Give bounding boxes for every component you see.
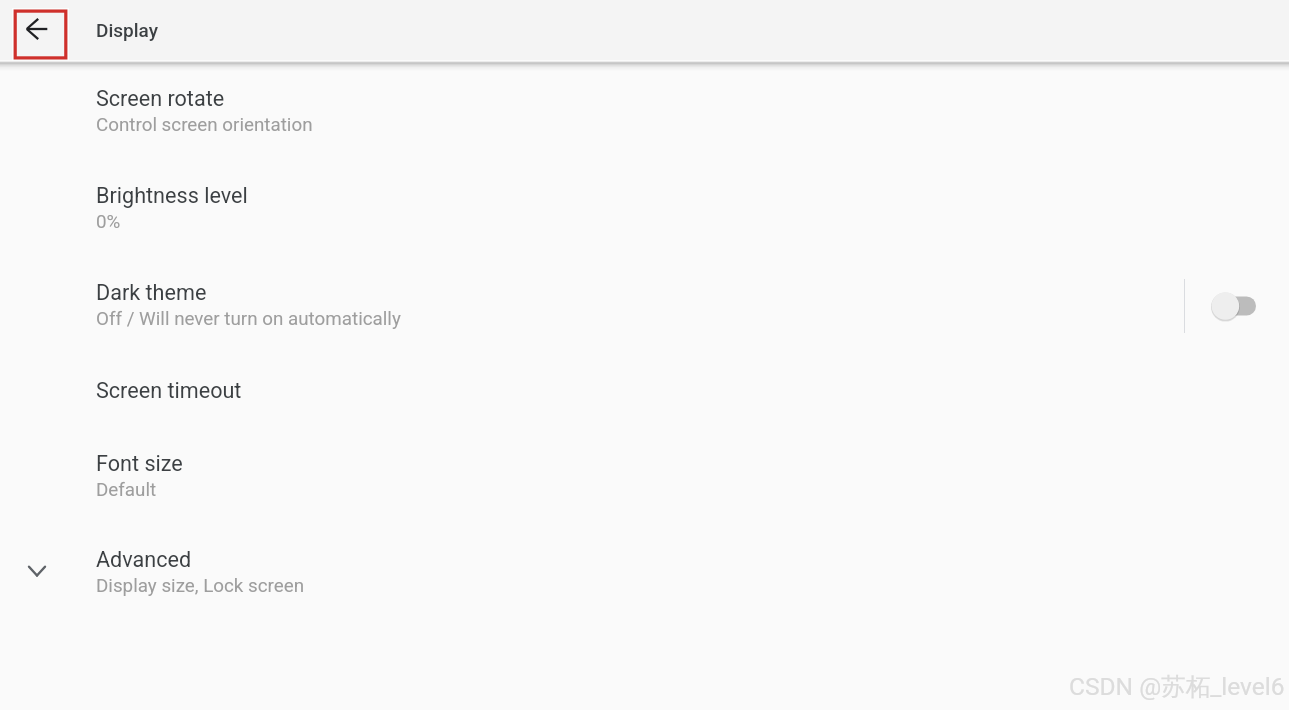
staticText: Brightness level bbox=[96, 183, 248, 208]
button[interactable]: Brightness level bbox=[0, 167, 1289, 257]
staticText: Advanced bbox=[96, 547, 192, 572]
button[interactable]: Screen timeout bbox=[0, 362, 1289, 424]
button[interactable]: Expand bbox=[0, 531, 1289, 621]
staticText: CSDN @苏柘_level6 bbox=[1069, 671, 1285, 702]
button[interactable]: Toggle dark theme bbox=[1200, 286, 1264, 326]
button[interactable]: Screen rotate bbox=[0, 70, 1289, 160]
staticText: Default bbox=[96, 479, 157, 501]
staticText: Screen timeout bbox=[96, 378, 242, 403]
staticText: Off / Will never turn on automatically bbox=[96, 308, 401, 330]
button[interactable]: Dark theme bbox=[0, 264, 1289, 354]
button[interactable]: Font size bbox=[0, 435, 1289, 525]
staticText: Display size, Lock screen bbox=[96, 575, 305, 597]
staticText: Display bbox=[96, 19, 158, 41]
button[interactable]: Back bbox=[11, 3, 63, 55]
staticText: Dark theme bbox=[96, 280, 207, 305]
staticText: 0% bbox=[96, 211, 121, 233]
other: Expand bbox=[22, 556, 52, 586]
staticText: Font size bbox=[96, 451, 183, 476]
staticText: Screen rotate bbox=[96, 86, 225, 111]
staticText: Control screen orientation bbox=[96, 114, 313, 136]
